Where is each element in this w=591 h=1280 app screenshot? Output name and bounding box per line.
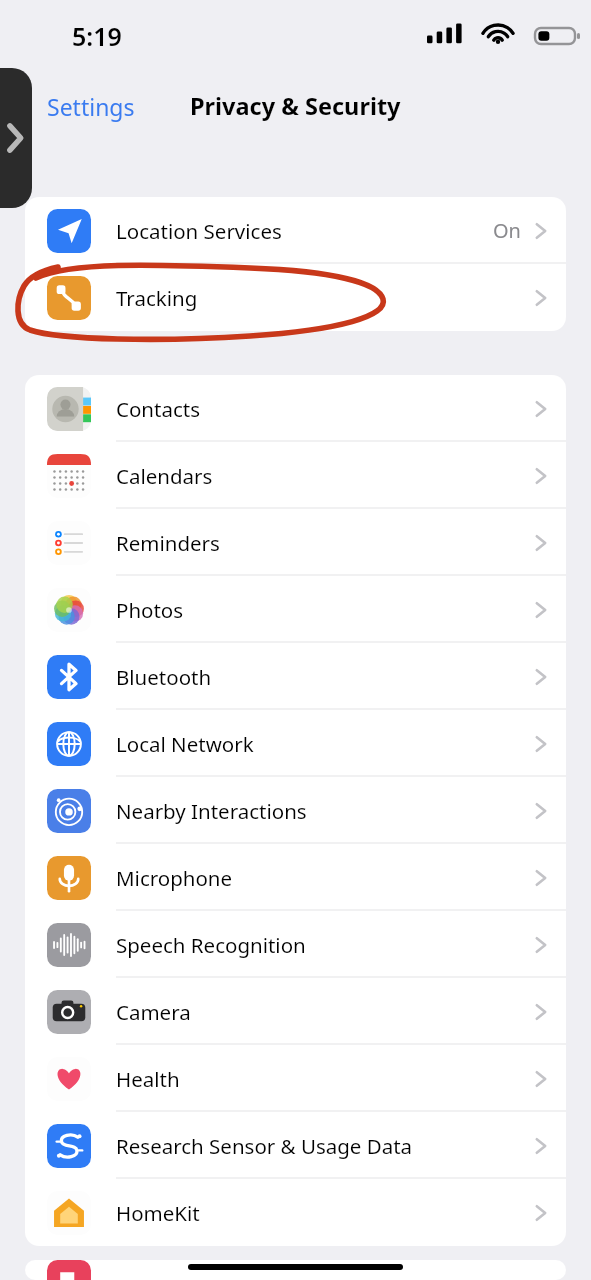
staticText: Camera: [116, 998, 191, 1026]
staticText: Bluetooth: [116, 663, 212, 691]
button[interactable]: Location Services: [25, 197, 566, 264]
button[interactable]: Calendars: [25, 442, 566, 509]
staticText: On: [493, 217, 521, 244]
staticText: 5:19: [72, 19, 122, 53]
button[interactable]: Speech Recognition: [25, 911, 566, 978]
staticText: Nearby Interactions: [116, 797, 307, 825]
staticText: Tracking: [116, 284, 198, 312]
button[interactable]: Reminders: [25, 509, 566, 576]
staticText: Microphone: [116, 864, 233, 892]
staticText: Reminders: [116, 529, 220, 557]
staticText: Speech Recognition: [116, 931, 306, 959]
button[interactable]: Microphone: [25, 844, 566, 911]
button[interactable]: Show sidebar: [0, 68, 32, 208]
staticText: Health: [116, 1065, 180, 1093]
button[interactable]: Settings: [47, 91, 135, 122]
staticText: Photos: [116, 596, 184, 624]
staticText: Location Services: [116, 217, 282, 245]
button[interactable]: [25, 1260, 566, 1280]
button[interactable]: HomeKit: [25, 1179, 566, 1246]
button[interactable]: Tracking: [25, 264, 566, 331]
staticText: Local Network: [116, 730, 254, 758]
button[interactable]: Local Network: [25, 710, 566, 777]
button[interactable]: Bluetooth: [25, 643, 566, 710]
button[interactable]: Research Sensor & Usage Data: [25, 1112, 566, 1179]
button[interactable]: Camera: [25, 978, 566, 1045]
button[interactable]: Health: [25, 1045, 566, 1112]
staticText: HomeKit: [116, 1199, 200, 1227]
staticText: Contacts: [116, 395, 200, 423]
staticText: Privacy & Security: [190, 90, 401, 122]
button[interactable]: Contacts: [25, 375, 566, 442]
staticText: Calendars: [116, 462, 213, 490]
button[interactable]: Photos: [25, 576, 566, 643]
staticText: Research Sensor & Usage Data: [116, 1132, 413, 1160]
button[interactable]: Nearby Interactions: [25, 777, 566, 844]
